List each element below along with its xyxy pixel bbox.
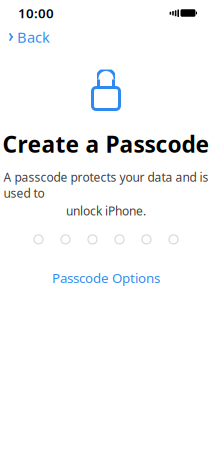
staticText: A passcode protects your data and is use… [3, 169, 208, 201]
button[interactable]: Back [0, 22, 50, 52]
staticText: 10:00 [18, 4, 54, 22]
staticText: Passcode Options [52, 269, 160, 287]
button[interactable]: Passcode Options [44, 265, 168, 291]
staticText: Create a Passcode [2, 129, 209, 159]
staticText: Back [17, 27, 50, 47]
staticText: unlock iPhone. [66, 203, 146, 219]
